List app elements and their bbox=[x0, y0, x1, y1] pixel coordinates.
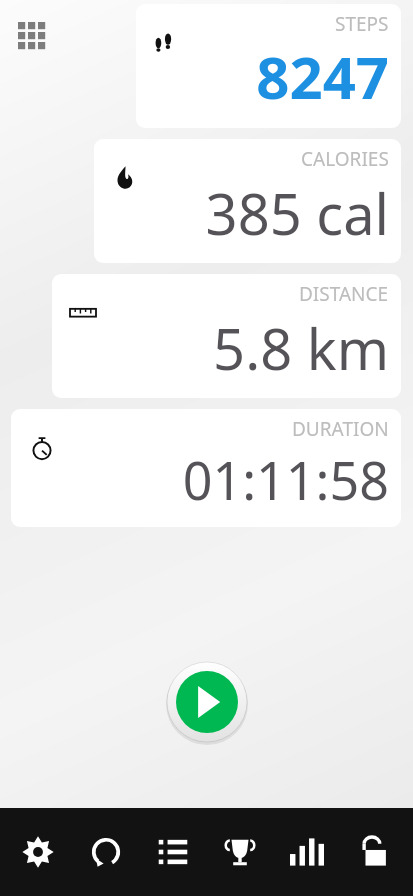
button[interactable]: Lock bbox=[346, 823, 404, 881]
staticText: 385 cal bbox=[205, 175, 389, 251]
staticText: DISTANCE bbox=[299, 281, 389, 307]
button[interactable]: Reset bbox=[77, 823, 135, 881]
button[interactable]: Apps bbox=[10, 14, 56, 60]
button[interactable]: Achievements bbox=[211, 823, 269, 881]
button[interactable]: DURATION bbox=[11, 409, 401, 527]
button[interactable]: Start workout bbox=[166, 661, 248, 743]
button[interactable]: DISTANCE bbox=[52, 274, 401, 398]
staticText: 01:11:58 bbox=[182, 444, 389, 515]
staticText: DURATION bbox=[292, 416, 389, 442]
staticText: 5.8 km bbox=[213, 310, 389, 386]
button[interactable]: Statistics bbox=[278, 823, 336, 881]
button[interactable]: STEPS bbox=[136, 4, 401, 128]
button[interactable]: Settings bbox=[9, 823, 67, 881]
button[interactable]: CALORIES bbox=[94, 139, 401, 263]
staticText: 8247 bbox=[256, 37, 389, 116]
staticText: STEPS bbox=[335, 11, 389, 37]
button[interactable]: History list bbox=[144, 823, 202, 881]
staticText: CALORIES bbox=[301, 146, 389, 172]
